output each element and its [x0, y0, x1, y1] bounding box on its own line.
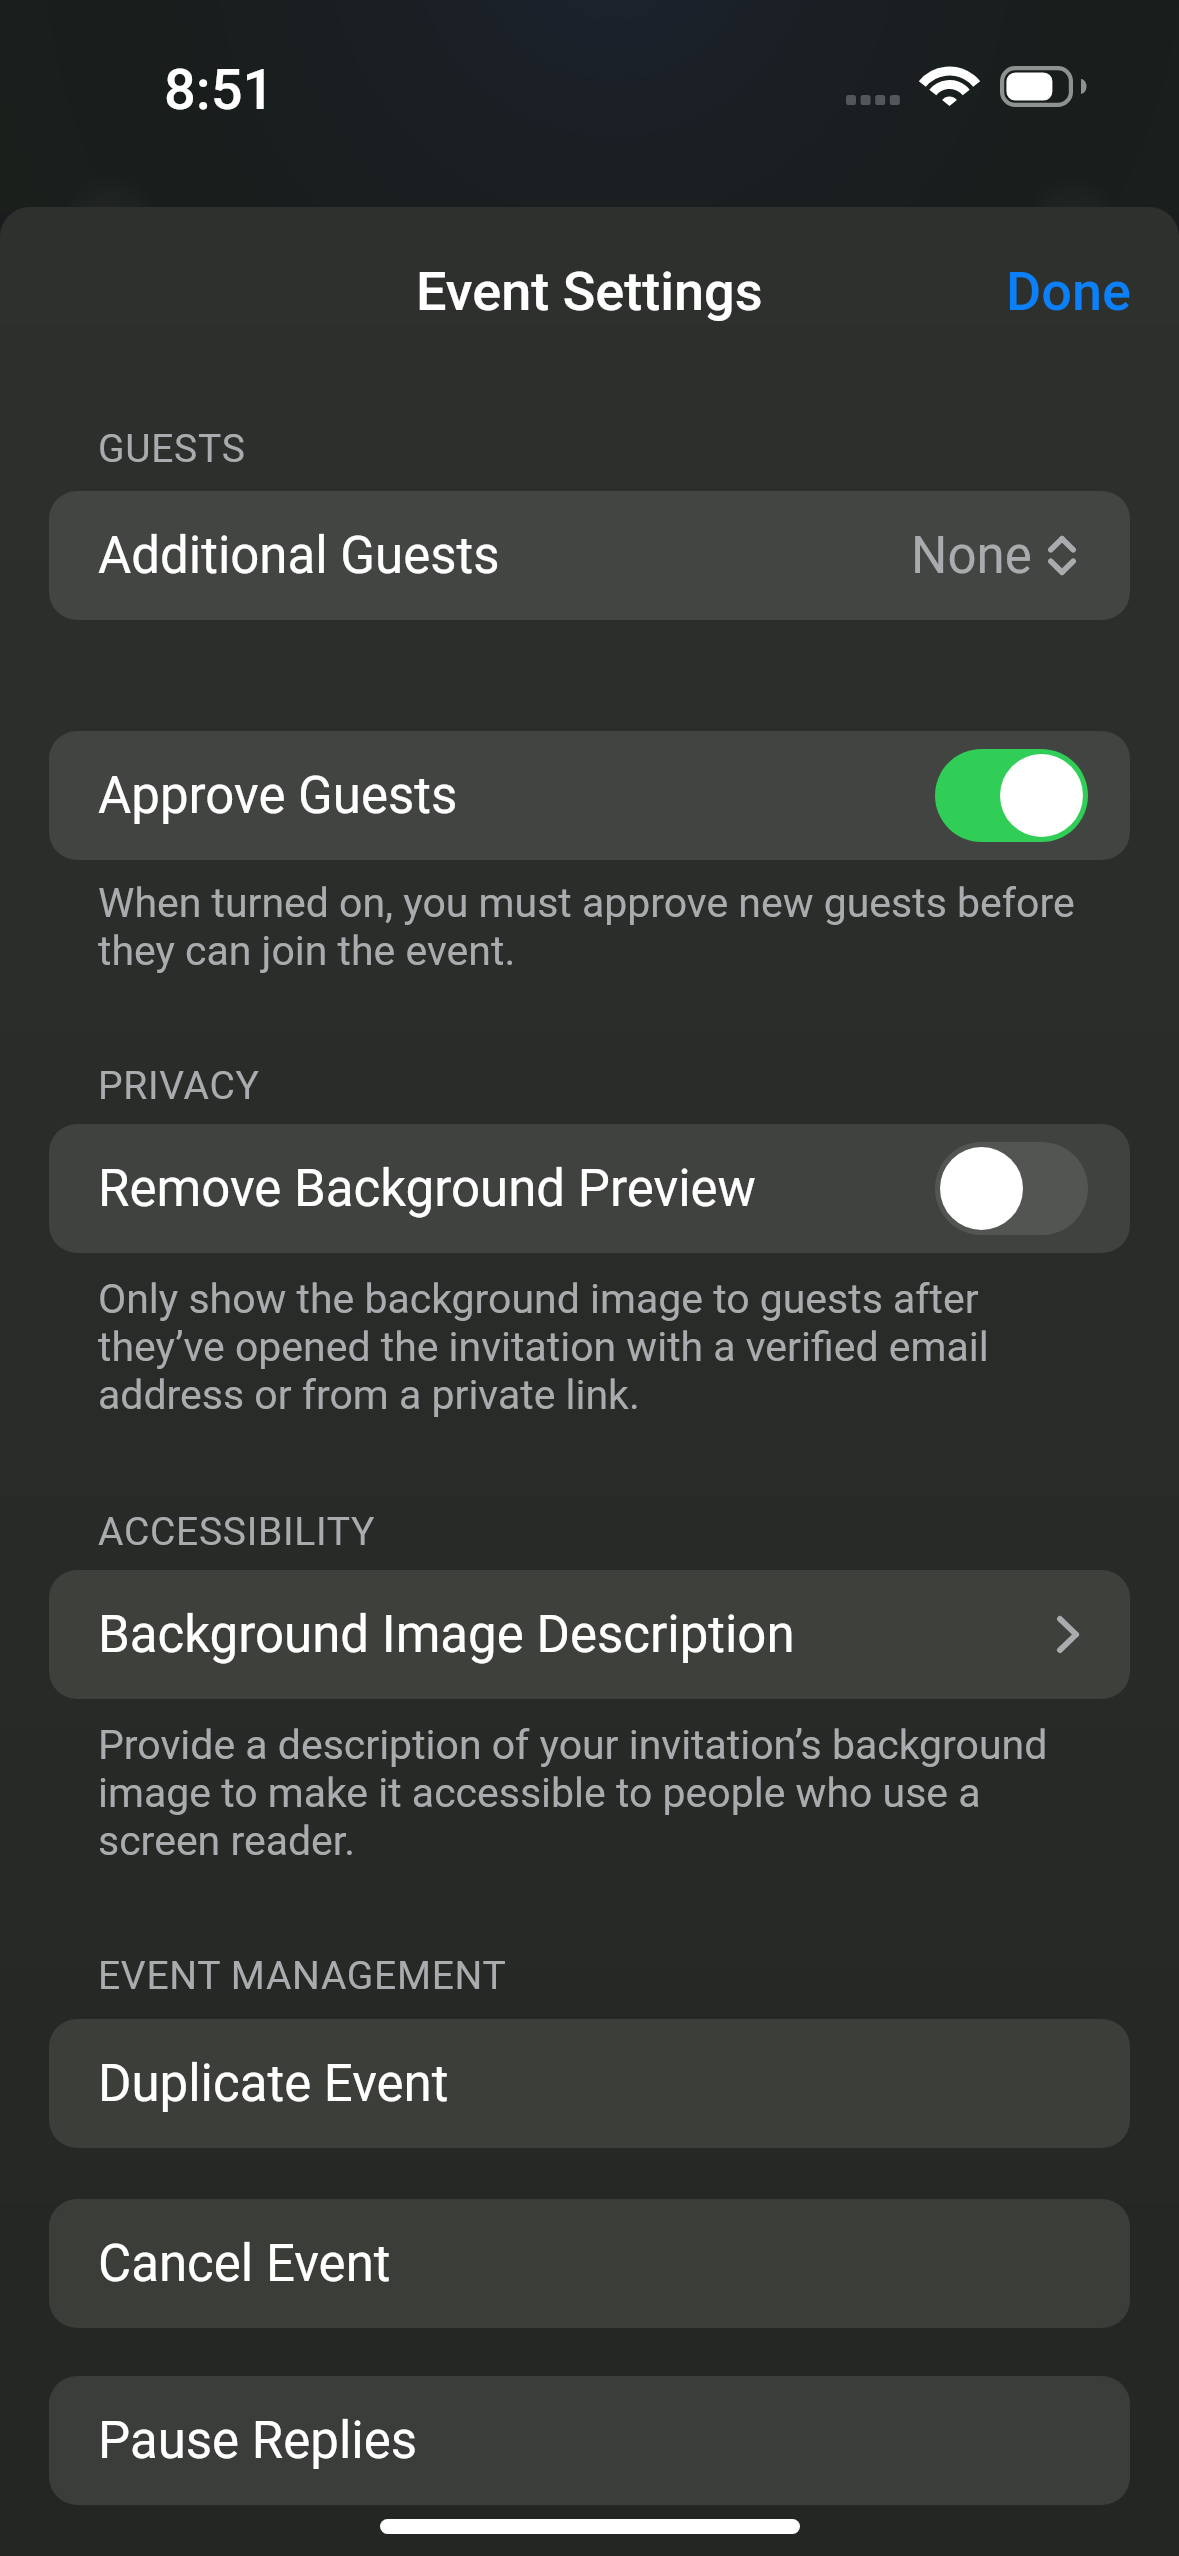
- staticText: Duplicate Event: [98, 2054, 449, 2114]
- staticText: Done: [1006, 260, 1132, 323]
- staticText: 8:51: [164, 57, 275, 123]
- staticText: Remove Background Preview: [98, 1159, 756, 1219]
- staticText: GUESTS: [98, 426, 246, 472]
- button[interactable]: Toggle off: [935, 1142, 1088, 1235]
- button[interactable]: Remove Background Preview: [49, 1124, 1130, 1253]
- staticText: Approve Guests: [98, 766, 458, 826]
- button[interactable]: Duplicate Event: [49, 2019, 1130, 2148]
- other: Change value: [1048, 536, 1076, 575]
- button[interactable]: Approve Guests: [49, 731, 1130, 860]
- other: Open: [1057, 1616, 1079, 1653]
- button[interactable]: Additional Guests: [49, 491, 1130, 620]
- staticText: Provide a description of your invitation…: [98, 1721, 1081, 1865]
- button[interactable]: Pause Replies: [49, 2376, 1130, 2505]
- staticText: Pause Replies: [98, 2411, 418, 2471]
- staticText: Event Settings: [416, 260, 763, 323]
- staticText: None: [911, 526, 1032, 586]
- staticText: Only show the background image to guests…: [98, 1275, 1081, 1419]
- button[interactable]: Cancel Event: [49, 2199, 1130, 2328]
- staticText: Additional Guests: [98, 526, 500, 586]
- button[interactable]: Background Image Description: [49, 1570, 1130, 1699]
- button[interactable]: Toggle on: [935, 749, 1088, 842]
- button[interactable]: Done: [992, 248, 1146, 335]
- staticText: Background Image Description: [98, 1605, 795, 1665]
- staticText: PRIVACY: [98, 1063, 260, 1109]
- staticText: ACCESSIBILITY: [98, 1509, 376, 1555]
- staticText: EVENT MANAGEMENT: [98, 1953, 507, 1999]
- staticText: Cancel Event: [98, 2234, 391, 2294]
- staticText: When turned on, you must approve new gue…: [98, 879, 1081, 975]
